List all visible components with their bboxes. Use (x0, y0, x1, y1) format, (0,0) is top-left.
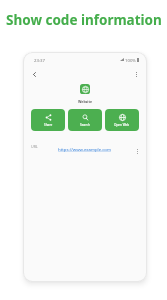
button[interactable]: More options (130, 68, 142, 80)
button[interactable]: URL options (132, 146, 142, 156)
staticText: Open Web (114, 123, 130, 127)
staticText: Website (78, 99, 93, 104)
staticText: Share (44, 123, 53, 127)
button[interactable]: Search (68, 109, 102, 131)
button[interactable]: https://www.example.com (58, 146, 111, 152)
button[interactable]: Open Web (105, 109, 139, 131)
staticText: URL (31, 144, 38, 149)
staticText: Search (80, 123, 90, 127)
staticText: 100% (125, 57, 136, 63)
staticText: 23:37 (34, 57, 45, 63)
button[interactable]: Share (31, 109, 65, 131)
button[interactable]: Back (28, 68, 40, 80)
staticText: Show code information (6, 11, 162, 29)
